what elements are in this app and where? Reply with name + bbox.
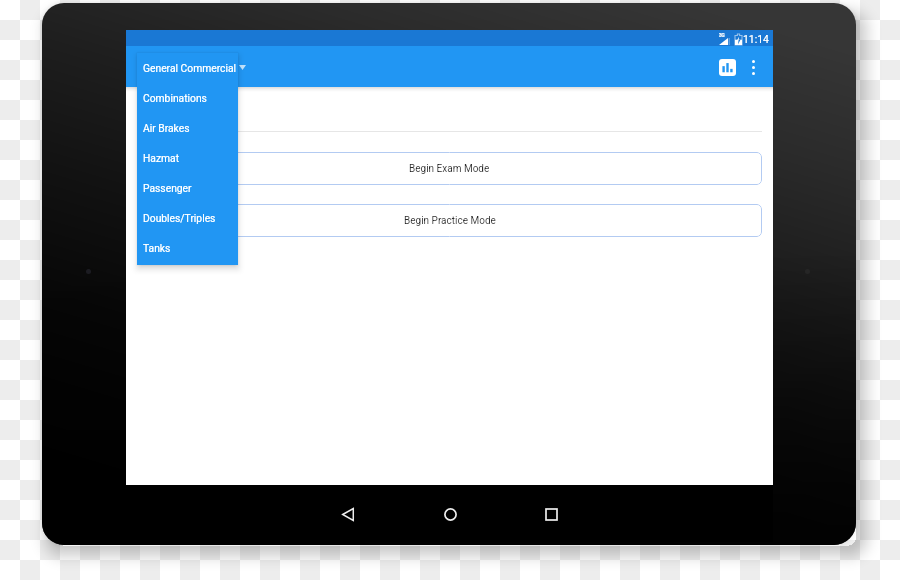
button[interactable]: Recents [531,494,571,534]
button[interactable]: Combinations [137,83,238,113]
staticText: Doubles/Triples [143,212,216,224]
staticText: Begin Practice Mode [404,215,496,227]
staticText: Air Brakes [143,122,190,134]
button[interactable]: Hazmat [137,143,238,173]
button[interactable]: Tanks [137,233,238,263]
staticText: Combinations [143,92,207,104]
button[interactable]: Statistics [710,50,744,84]
staticText: Tanks [143,242,171,254]
button[interactable]: Begin Exam Mode [137,152,762,185]
staticText: Hazmat [143,152,180,164]
button[interactable]: Home [430,494,470,534]
staticText: General Commercial [143,62,237,74]
button[interactable]: General Commercial [137,53,238,83]
button[interactable]: Air Brakes [137,113,238,143]
button[interactable]: More options [740,50,766,84]
button[interactable]: Back [328,494,368,534]
staticText: 3G [719,33,725,38]
staticText: Begin Exam Mode [409,163,490,175]
button[interactable]: Begin Practice Mode [137,204,762,237]
staticText: Passenger [143,182,192,194]
button[interactable]: Passenger [137,173,238,203]
button[interactable]: General Commercial [137,51,249,83]
button[interactable]: Doubles/Triples [137,203,238,233]
staticText: 11:14 [743,33,769,45]
